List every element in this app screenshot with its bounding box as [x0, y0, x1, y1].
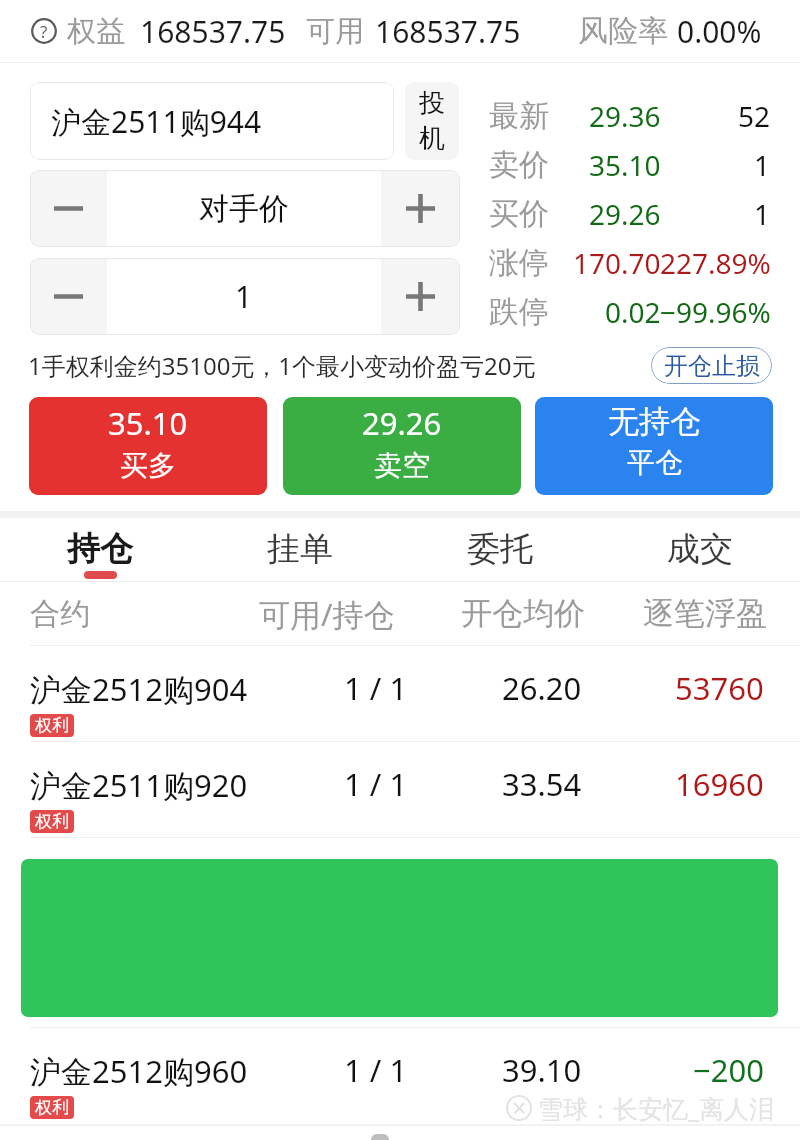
staticText: ? [40, 20, 48, 43]
staticText: 168537.75 [375, 11, 521, 52]
staticText: 沪金2511购944 [51, 101, 262, 142]
button[interactable]: Decrease [30, 170, 107, 247]
button[interactable]: 无持仓 [535, 397, 773, 495]
staticText: 沪金2511购920 [30, 764, 248, 806]
staticText: 开仓止损 [664, 351, 760, 381]
staticText: 对手价 [199, 190, 289, 228]
staticText: 最新 [489, 97, 549, 135]
button[interactable]: 投 机 [405, 82, 459, 160]
staticText: 1 / 1 [344, 1049, 408, 1091]
staticText: 沪金2512购960 [30, 1050, 248, 1092]
button[interactable]: Increase [381, 170, 460, 247]
staticText: 1 / 1 [344, 667, 408, 709]
staticText: 1 [754, 146, 771, 184]
button[interactable]: 沪金2512购904 [0, 646, 800, 741]
staticText: 53760 [675, 667, 764, 709]
staticText: 权利 [35, 715, 69, 736]
button[interactable]: 沪金2512购960 [0, 1028, 800, 1123]
staticText: 1手权利金约35100元，1个最小变动价盈亏20元 [28, 349, 536, 382]
staticText: 委托 [467, 528, 533, 570]
staticText: 1 [235, 276, 253, 317]
button[interactable]: Increase [381, 258, 460, 335]
staticText: 52 [738, 97, 771, 135]
staticText: −99.96% [660, 293, 771, 331]
staticText: 16960 [675, 763, 764, 805]
staticText: 39.10 [502, 1049, 582, 1091]
staticText: 合约 [30, 595, 90, 633]
staticText: −200 [693, 1049, 764, 1091]
button[interactable]: 对手价 [107, 170, 381, 247]
staticText: 跌停 [489, 293, 549, 331]
staticText: 227.89% [660, 244, 771, 282]
staticText: 卖价 [489, 146, 549, 184]
staticText: 33.54 [502, 763, 582, 805]
staticText: 风险率 [578, 12, 668, 50]
staticText: 35.10 [589, 146, 661, 184]
button[interactable]: 成交 [600, 518, 800, 581]
staticText: 权利 [35, 811, 69, 832]
button[interactable]: 沪金2511购920 [0, 742, 800, 837]
staticText: 沪金2512购904 [30, 668, 248, 710]
staticText: 挂单 [267, 528, 333, 570]
staticText: 170.70 [573, 244, 661, 282]
staticText: 权益 [67, 13, 125, 50]
button[interactable]: 29.26 [283, 397, 521, 495]
staticText: 29.26 [589, 195, 661, 233]
button[interactable]: 持仓 [0, 518, 200, 581]
staticText: 卖空 [374, 448, 430, 483]
staticText: 29.36 [589, 97, 661, 135]
staticText: 成交 [667, 528, 733, 570]
button[interactable]: 沪金2511购944 [30, 82, 394, 160]
staticText: 权利 [35, 1097, 69, 1118]
staticText: 168537.75 [140, 11, 286, 52]
staticText: 雪球：长安忆_离人泪 [538, 1091, 775, 1125]
button[interactable]: 35.10 [29, 397, 267, 495]
staticText: 0.02 [605, 293, 661, 331]
staticText: 平仓 [627, 445, 683, 480]
staticText: 逐笔浮盈 [643, 594, 767, 633]
button[interactable]: Decrease [30, 258, 107, 335]
staticText: 26.20 [502, 667, 582, 709]
button[interactable]: 开仓止损 [651, 347, 772, 384]
staticText: 29.26 [362, 402, 442, 444]
staticText: 0.00% [677, 11, 762, 52]
staticText: 持仓 [67, 528, 133, 570]
staticText: 涨停 [489, 244, 549, 282]
button[interactable]: Help [31, 18, 57, 44]
button[interactable]: 1 [107, 258, 381, 335]
staticText: 开仓均价 [461, 594, 585, 633]
staticText: 可用 [306, 13, 364, 50]
staticText: 1 / 1 [344, 763, 408, 805]
button[interactable]: 委托 [400, 518, 600, 581]
staticText: 买多 [120, 448, 176, 483]
staticText: 1 [754, 195, 771, 233]
staticText: 买价 [489, 195, 549, 233]
staticText: 无持仓 [608, 402, 701, 441]
button[interactable]: 挂单 [200, 518, 400, 581]
staticText: 投 机 [419, 87, 445, 155]
staticText: 可用/持仓 [259, 593, 395, 635]
staticText: 35.10 [108, 402, 188, 444]
